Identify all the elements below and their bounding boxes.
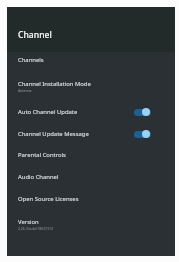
button[interactable]: Channel Update Message: [7, 123, 175, 145]
staticText: Channel Installation Mode: [18, 80, 91, 88]
staticText: Antenna: [18, 88, 32, 93]
staticText: Channel Update Message: [18, 130, 89, 138]
staticText: Parental Controls: [18, 151, 66, 159]
staticText: Open Source Licenses: [18, 195, 79, 203]
staticText: Version: [18, 218, 39, 226]
staticText: Channels: [18, 56, 44, 64]
staticText: Channel: [18, 29, 52, 41]
staticText: Auto Channel Update: [18, 108, 78, 116]
button[interactable]: Channels: [7, 49, 175, 71]
button[interactable]: Version: [7, 209, 175, 239]
button[interactable]: Open Source Licenses: [7, 188, 175, 210]
button[interactable]: Parental Controls: [7, 144, 175, 166]
button[interactable]: Audio Channel: [7, 166, 175, 188]
staticText: 2.26.3 build 18037313: [18, 226, 53, 231]
button[interactable]: Channel Installation Mode: [7, 71, 175, 101]
button[interactable]: Auto Channel Update: [7, 101, 175, 123]
staticText: Audio Channel: [18, 173, 59, 181]
